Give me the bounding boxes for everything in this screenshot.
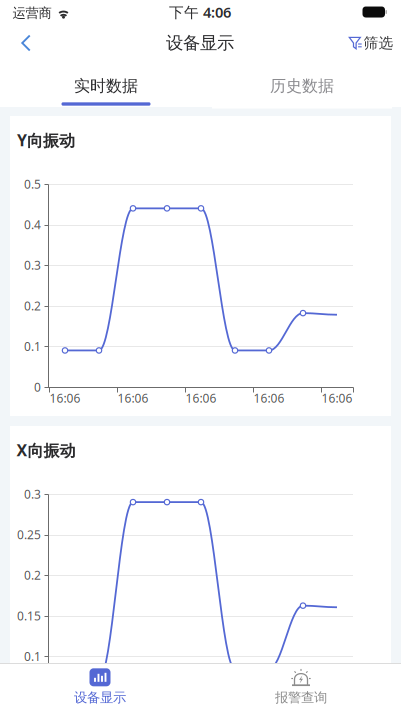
staticText: 16:06 [185, 390, 216, 406]
staticText: 0.15 [17, 608, 41, 624]
staticText: 设备显示 [74, 689, 126, 706]
staticText: 下午 4:06 [169, 2, 231, 22]
staticText: Y向振动 [17, 129, 75, 151]
staticText: 0.2 [24, 298, 41, 314]
staticText: 16:06 [253, 390, 284, 406]
button[interactable]: 设备显示 [34, 663, 166, 710]
staticText: 0.1 [24, 338, 41, 354]
staticText: 0.3 [24, 257, 41, 273]
staticText: 16:06 [321, 390, 352, 406]
button[interactable]: 实时数据 [6, 62, 206, 107]
staticText: 16:06 [49, 700, 80, 710]
button[interactable]: 历史数据 [212, 63, 392, 108]
staticText: 运营商 [12, 5, 51, 21]
staticText: 0.2 [24, 567, 41, 583]
staticText: 0 [34, 379, 41, 395]
staticText: 历史数据 [270, 76, 334, 96]
staticText: X向振动 [16, 439, 75, 461]
staticText: 设备显示 [166, 32, 234, 54]
staticText: 报警查询 [275, 689, 327, 706]
staticText: 16:06 [117, 700, 148, 710]
staticText: 16:06 [49, 390, 80, 406]
staticText: 16:06 [253, 700, 284, 710]
staticText: 筛选 [363, 34, 393, 52]
staticText: 0.25 [17, 527, 41, 542]
button[interactable]: 报警查询 [235, 663, 367, 710]
staticText: 16:06 [117, 390, 148, 406]
button[interactable]: 筛选 [340, 25, 401, 61]
staticText: 16:06 [321, 700, 352, 710]
staticText: 0.3 [24, 486, 41, 502]
staticText: 0.1 [24, 648, 41, 664]
staticText: 0.5 [24, 176, 41, 192]
button[interactable]: Back [4, 24, 48, 62]
staticText: 实时数据 [74, 76, 138, 96]
staticText: 0.4 [24, 217, 41, 232]
